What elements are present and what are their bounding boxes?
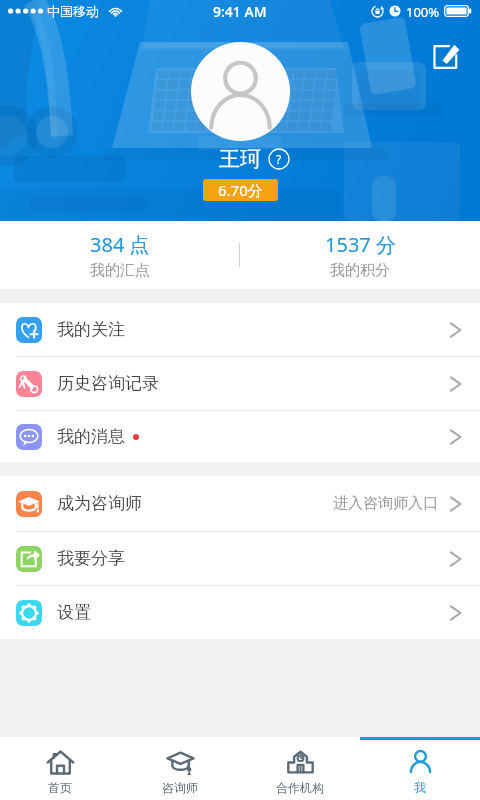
staticText: 王珂 — [219, 146, 261, 172]
staticText: 我的消息 — [57, 426, 125, 447]
staticText: 合作机构 — [276, 780, 324, 795]
staticText: 进入咨询师入口 — [333, 494, 438, 513]
staticText: 我的汇点 — [90, 261, 150, 280]
staticText: 中国移动 — [47, 3, 99, 19]
staticText: ? — [276, 151, 282, 167]
staticText: 384 点 — [90, 231, 150, 258]
staticText: 1537 分 — [325, 231, 396, 258]
button[interactable]: 首页 — [0, 740, 120, 800]
button[interactable]: 我要分享 — [0, 532, 480, 585]
button[interactable]: 我的消息 — [0, 411, 480, 462]
button[interactable]: Edit profile — [430, 41, 462, 73]
staticText: 100% — [406, 3, 440, 21]
staticText: 首页 — [48, 780, 72, 795]
staticText: 历史咨询记录 — [57, 373, 159, 394]
button[interactable]: 我 — [360, 740, 480, 800]
button[interactable]: 成为咨询师 — [0, 476, 480, 531]
button[interactable]: Help — [268, 148, 290, 170]
staticText: 我要分享 — [57, 548, 125, 569]
staticText: 咨询师 — [162, 780, 198, 795]
staticText: 成为咨询师 — [57, 493, 142, 514]
staticText: 我的积分 — [330, 261, 390, 280]
button[interactable]: 384 点 — [0, 221, 239, 289]
button[interactable]: 我的关注 — [0, 303, 480, 356]
button[interactable]: 咨询师 — [120, 740, 240, 800]
button[interactable]: 合作机构 — [240, 740, 360, 800]
staticText: 9:41 AM — [213, 2, 267, 21]
staticText: 6.70分 — [218, 180, 263, 200]
staticText: 我 — [414, 780, 426, 795]
button[interactable]: 历史咨询记录 — [0, 357, 480, 410]
staticText: 我的关注 — [57, 319, 125, 340]
button[interactable]: Profile photo — [191, 42, 290, 141]
button[interactable]: 6.70分 — [203, 179, 278, 201]
staticText: 设置 — [57, 602, 91, 623]
button[interactable]: 1537 分 — [240, 221, 480, 289]
button[interactable]: 设置 — [0, 586, 480, 639]
